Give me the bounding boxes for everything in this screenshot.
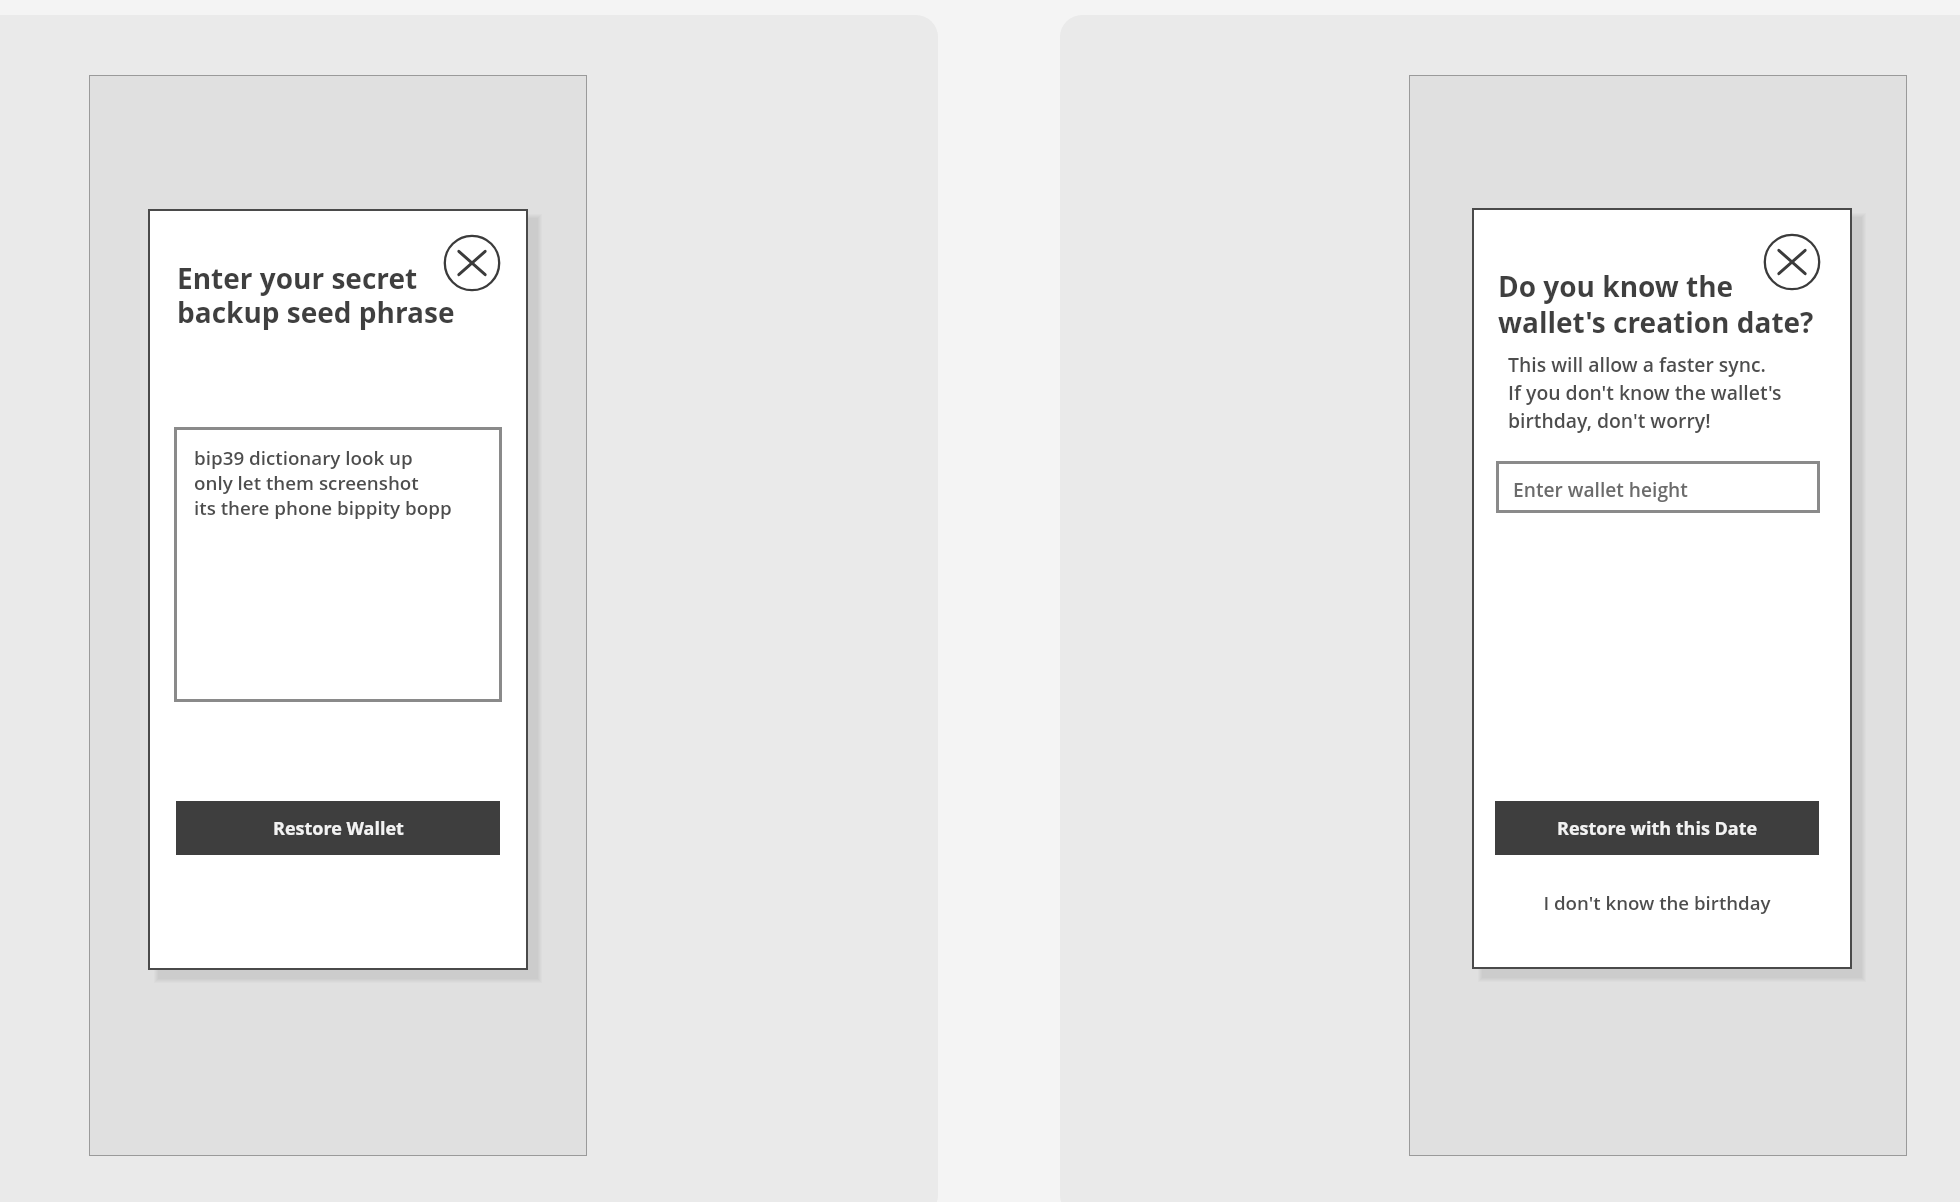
button[interactable]: Close xyxy=(1764,234,1820,290)
staticText: This will allow a faster sync. If you do… xyxy=(1508,351,1782,434)
staticText: Restore Wallet xyxy=(273,816,404,841)
staticText: Enter your secret backup seed phrase xyxy=(177,259,455,332)
button[interactable]: Restore with this Date xyxy=(1495,801,1819,855)
button[interactable]: I don't know the birthday xyxy=(1495,885,1819,919)
button[interactable]: Restore Wallet xyxy=(176,801,500,855)
staticText: I don't know the birthday xyxy=(1543,890,1771,915)
button[interactable]: Close xyxy=(444,235,500,291)
staticText: Restore with this Date xyxy=(1557,816,1758,841)
staticText: Enter wallet height xyxy=(1513,476,1688,502)
button[interactable]: bip39 dictionary look up only let them s… xyxy=(174,427,502,702)
staticText: bip39 dictionary look up only let them s… xyxy=(194,445,452,520)
staticText: Do you know the wallet's creation date? xyxy=(1498,267,1814,341)
button[interactable]: Enter wallet height xyxy=(1496,461,1820,513)
